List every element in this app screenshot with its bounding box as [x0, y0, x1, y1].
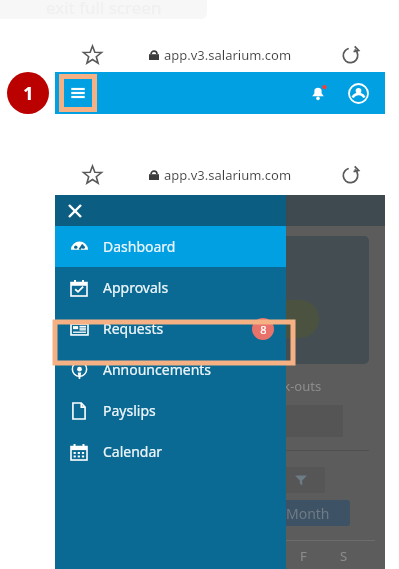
button[interactable]: Reload — [333, 38, 367, 72]
staticText: app.v3.salarium.com — [164, 166, 292, 184]
staticText: Requests — [103, 319, 164, 338]
staticText: Clock-ins and clock-outs — [175, 377, 322, 395]
button[interactable]: Payslips — [55, 390, 286, 431]
staticText: Payslips — [103, 401, 156, 420]
staticText: Announcements — [103, 360, 212, 379]
staticText: Dashboard — [103, 237, 176, 256]
button[interactable]: Open navigation menu — [64, 79, 92, 107]
staticText: Approvals — [103, 278, 169, 297]
staticText: Month — [286, 504, 330, 523]
staticText: 1 — [23, 81, 34, 106]
button[interactable]: Announcements — [55, 349, 286, 390]
button[interactable]: Bookmark — [75, 38, 109, 72]
staticText: 8 — [260, 322, 267, 337]
button[interactable]: Close menu — [63, 199, 87, 223]
staticText: app.v3.salarium.com — [164, 46, 292, 64]
button[interactable]: Approvals — [55, 267, 286, 308]
button[interactable]: Notifications — [303, 78, 333, 108]
button[interactable]: Calendar — [55, 431, 286, 472]
staticText: Calendar — [103, 442, 163, 461]
button[interactable]: Reload — [333, 158, 367, 192]
button[interactable]: Dashboard — [55, 226, 286, 267]
button[interactable]: Bookmark — [75, 158, 109, 192]
staticText: S — [340, 547, 348, 565]
staticText: F — [300, 547, 307, 565]
button[interactable]: Requests — [55, 308, 286, 349]
button[interactable]: Account — [343, 78, 373, 108]
